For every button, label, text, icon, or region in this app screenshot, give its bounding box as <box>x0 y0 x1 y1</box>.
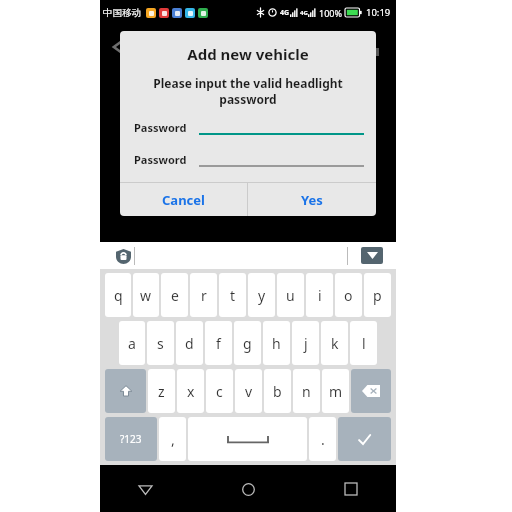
staticText: v <box>245 382 253 401</box>
button[interactable]: . <box>309 417 336 461</box>
staticText: y <box>258 286 266 305</box>
button[interactable]: i <box>306 273 333 317</box>
staticText: r <box>201 286 207 305</box>
staticText: d <box>185 334 194 353</box>
staticText: l <box>362 334 366 353</box>
staticText: 100% <box>319 7 342 19</box>
button[interactable]: t <box>219 273 246 317</box>
button[interactable]: Space <box>188 417 307 461</box>
button[interactable]: e <box>161 273 188 317</box>
staticText: 中国移动 <box>103 7 141 19</box>
staticText: k <box>331 334 339 353</box>
button[interactable]: Hide keyboard <box>361 247 383 264</box>
button[interactable]: o <box>335 273 362 317</box>
staticText: a <box>128 334 136 353</box>
button[interactable]: n <box>293 369 320 413</box>
staticText: s <box>157 334 164 353</box>
staticText: g <box>243 334 252 353</box>
staticText: j <box>304 334 308 353</box>
staticText: h <box>272 334 281 353</box>
button[interactable]: h <box>263 321 290 365</box>
staticText: e <box>171 286 179 305</box>
staticText: b <box>273 382 282 401</box>
button[interactable]: Delete <box>351 369 391 413</box>
button[interactable]: x <box>177 369 204 413</box>
button[interactable]: g <box>234 321 261 365</box>
staticText: m <box>329 382 343 401</box>
button[interactable]: c <box>206 369 233 413</box>
staticText: Yes <box>301 191 323 209</box>
staticText: t <box>230 286 236 305</box>
button[interactable]: Secure input <box>113 246 133 266</box>
button[interactable]: Cancel <box>120 183 247 216</box>
staticText: z <box>158 382 165 401</box>
button[interactable]: d <box>176 321 203 365</box>
button[interactable]: a <box>119 321 145 365</box>
button[interactable]: p <box>364 273 391 317</box>
staticText: w <box>140 286 152 305</box>
button[interactable]: Shift <box>105 369 146 413</box>
button[interactable]: b <box>264 369 291 413</box>
button[interactable]: v <box>235 369 262 413</box>
staticText: Password <box>134 152 187 167</box>
staticText: c <box>216 382 223 401</box>
button[interactable]: , <box>159 417 186 461</box>
staticText: . <box>321 430 325 449</box>
button[interactable]: Recents <box>336 474 366 504</box>
button[interactable]: m <box>322 369 349 413</box>
staticText: Cancel <box>162 191 205 209</box>
button[interactable] <box>199 119 364 135</box>
button[interactable]: Home <box>233 474 263 504</box>
button[interactable]: r <box>190 273 217 317</box>
button[interactable]: z <box>148 369 175 413</box>
staticText: , <box>171 430 175 449</box>
staticText: ?123 <box>120 432 142 446</box>
staticText: o <box>344 286 353 305</box>
button[interactable]: s <box>147 321 174 365</box>
staticText: u <box>286 286 295 305</box>
staticText: Password <box>134 120 187 135</box>
button[interactable]: l <box>350 321 377 365</box>
staticText: 10:19 <box>366 6 391 19</box>
staticText: Please input the valid headlight passwor… <box>134 75 362 107</box>
staticText: p <box>373 286 382 305</box>
button[interactable]: Yes <box>248 183 376 216</box>
button[interactable]: u <box>277 273 304 317</box>
button[interactable]: Enter <box>338 417 391 461</box>
staticText: 4G <box>280 8 290 18</box>
button[interactable]: y <box>248 273 275 317</box>
button[interactable]: k <box>321 321 348 365</box>
button[interactable]: Back <box>130 474 160 504</box>
staticText: x <box>187 382 195 401</box>
button[interactable]: w <box>133 273 159 317</box>
button[interactable]: j <box>292 321 319 365</box>
staticText: q <box>114 286 123 305</box>
staticText: Add new vehicle <box>120 44 376 64</box>
staticText: 4G <box>300 9 308 17</box>
button[interactable]: f <box>205 321 232 365</box>
button[interactable]: q <box>105 273 131 317</box>
button[interactable] <box>199 151 364 167</box>
staticText: f <box>216 334 221 353</box>
button[interactable]: ?123 <box>105 417 157 461</box>
staticText: i <box>318 286 322 305</box>
staticText: n <box>302 382 311 401</box>
